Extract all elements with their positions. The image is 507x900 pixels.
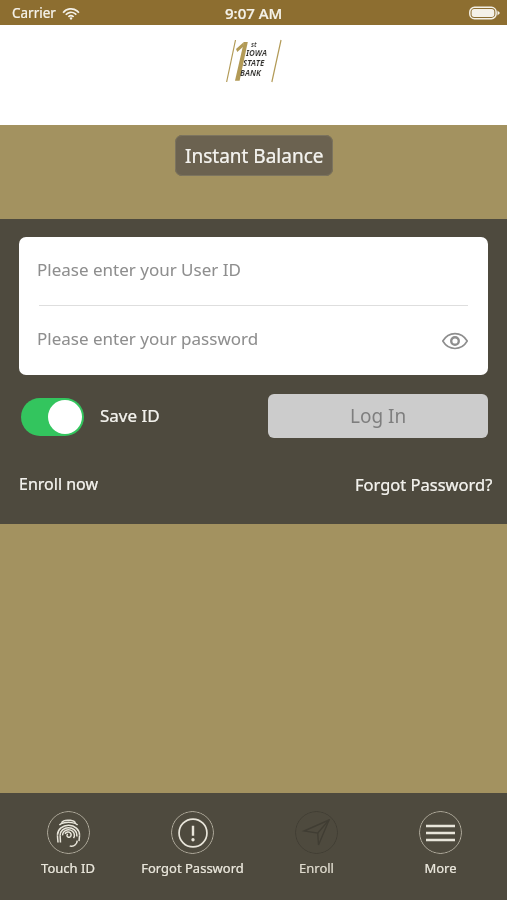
button[interactable]: Please enter your User ID [19,237,488,305]
staticText: STATE [243,57,265,68]
staticText: Please enter your User ID [37,258,241,281]
staticText: Forgot Password [141,859,244,877]
button[interactable]: Forgot Password? [355,473,493,495]
button[interactable]: Forgot Password [130,793,254,900]
button[interactable]: Enroll now [19,473,98,495]
button[interactable]: Enroll [254,793,378,900]
button[interactable]: Please enter your password [19,306,488,375]
staticText: Forgot Password? [355,473,493,495]
staticText: Carrier [12,4,56,22]
staticText: Please enter your password [37,327,259,350]
button[interactable]: Save ID toggle [21,398,84,436]
staticText: Save ID [100,404,160,427]
staticText: More [424,859,457,877]
staticText: Instant Balance [185,143,324,169]
staticText: IOWA [246,47,267,58]
staticText: 9:07 AM [225,3,283,23]
button[interactable]: Touch ID [6,793,130,900]
button[interactable]: Instant Balance [175,135,333,176]
staticText: Log In [350,403,407,429]
staticText: Enroll now [19,473,98,495]
staticText: Touch ID [41,859,95,877]
staticText: st [251,40,257,49]
button[interactable]: More [378,793,502,900]
staticText: BANK [240,67,261,78]
button[interactable]: Show password [440,326,470,356]
button[interactable]: Log In [268,394,488,438]
staticText: Enroll [299,859,334,877]
